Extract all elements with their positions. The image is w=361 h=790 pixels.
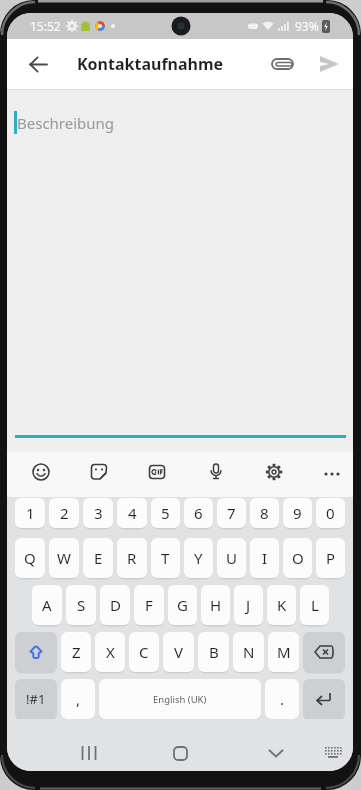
staticText: Y — [194, 548, 203, 568]
staticText: 4 — [128, 503, 137, 523]
button[interactable]: E — [83, 538, 113, 578]
button[interactable]: !#1 — [15, 679, 57, 719]
button[interactable] — [309, 44, 349, 84]
button[interactable]: 3 — [83, 498, 113, 528]
button[interactable]: 7 — [217, 498, 246, 528]
staticText: 6 — [194, 503, 203, 523]
staticText: I — [262, 548, 268, 568]
button[interactable]: English (UK) — [99, 679, 261, 719]
button[interactable] — [138, 453, 176, 491]
staticText: R — [127, 548, 137, 568]
staticText: English (UK) — [153, 693, 207, 706]
button[interactable]: H — [201, 585, 230, 625]
staticText: Kontaktaufnahme — [77, 53, 224, 75]
staticText: B — [209, 642, 219, 662]
staticText: 3 — [94, 503, 103, 523]
staticText: H — [210, 595, 222, 615]
button[interactable]: Y — [184, 538, 213, 578]
button[interactable]: L — [300, 585, 329, 625]
staticText: G — [177, 595, 188, 615]
button[interactable]: Z — [61, 632, 91, 672]
staticText: 7 — [227, 503, 236, 523]
staticText: Beschreibung — [17, 113, 115, 133]
button[interactable]: 1 — [15, 498, 45, 528]
staticText: 9 — [293, 503, 302, 523]
button[interactable]: S — [66, 585, 96, 625]
button[interactable] — [15, 632, 57, 672]
button[interactable]: P — [316, 538, 345, 578]
button[interactable]: 5 — [151, 498, 180, 528]
button[interactable]: R — [117, 538, 147, 578]
staticText: M — [277, 642, 291, 662]
button[interactable]: W — [49, 538, 79, 578]
staticText: V — [174, 642, 184, 662]
button[interactable]: X — [95, 632, 125, 672]
button[interactable]: A — [32, 585, 62, 625]
staticText: 15:52 — [30, 18, 61, 34]
staticText: 8 — [260, 503, 269, 523]
staticText: O — [292, 548, 304, 568]
button[interactable]: G — [168, 585, 197, 625]
button[interactable]: , — [61, 679, 95, 719]
staticText: L — [311, 595, 319, 615]
staticText: U — [226, 548, 237, 568]
staticText: C — [139, 642, 149, 662]
button[interactable] — [303, 679, 345, 719]
button[interactable]: T — [151, 538, 180, 578]
button[interactable]: B — [198, 632, 229, 672]
button[interactable]: U — [217, 538, 246, 578]
staticText: 93% — [295, 18, 319, 34]
staticText: . — [280, 689, 285, 709]
button[interactable] — [313, 453, 351, 491]
button[interactable] — [17, 43, 59, 85]
button[interactable] — [80, 453, 118, 491]
staticText: W — [57, 548, 71, 568]
staticText: A — [42, 595, 52, 615]
button[interactable] — [256, 735, 296, 771]
button[interactable]: K — [267, 585, 296, 625]
button[interactable]: V — [163, 632, 194, 672]
staticText: E — [94, 548, 103, 568]
staticText: T — [161, 548, 170, 568]
staticText: Z — [72, 642, 81, 662]
button[interactable]: M — [268, 632, 299, 672]
button[interactable]: C — [129, 632, 159, 672]
staticText: 5 — [161, 503, 170, 523]
staticText: 1 — [26, 503, 35, 523]
staticText: J — [246, 595, 251, 615]
button[interactable]: 8 — [250, 498, 279, 528]
button[interactable] — [22, 453, 60, 491]
staticText: P — [326, 548, 336, 568]
staticText: S — [77, 595, 86, 615]
button[interactable] — [69, 735, 109, 771]
staticText: N — [243, 642, 255, 662]
button[interactable]: J — [234, 585, 263, 625]
staticText: X — [106, 642, 115, 662]
button[interactable]: . — [265, 679, 299, 719]
button[interactable]: N — [233, 632, 264, 672]
button[interactable]: 6 — [184, 498, 213, 528]
staticText: F — [145, 595, 153, 615]
button[interactable]: Q — [15, 538, 45, 578]
button[interactable]: 9 — [283, 498, 312, 528]
staticText: , — [76, 689, 81, 709]
button[interactable]: 2 — [49, 498, 79, 528]
button[interactable] — [160, 735, 200, 771]
button[interactable]: F — [134, 585, 164, 625]
button[interactable] — [316, 736, 350, 770]
button[interactable] — [255, 453, 293, 491]
staticText: 2 — [60, 503, 69, 523]
button[interactable] — [197, 453, 235, 491]
staticText: K — [277, 595, 287, 615]
button[interactable]: D — [100, 585, 130, 625]
button[interactable] — [303, 632, 345, 672]
staticText: !#1 — [26, 690, 46, 708]
button[interactable]: I — [250, 538, 279, 578]
button[interactable] — [263, 44, 303, 84]
staticText: D — [110, 595, 121, 615]
button[interactable]: O — [283, 538, 312, 578]
staticText: Q — [24, 548, 36, 568]
button[interactable]: 0 — [316, 498, 345, 528]
button[interactable]: 4 — [117, 498, 147, 528]
staticText: 0 — [326, 503, 335, 523]
